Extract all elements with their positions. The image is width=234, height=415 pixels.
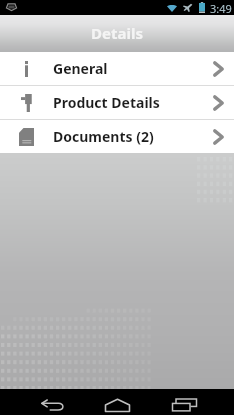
button[interactable]: Back bbox=[30, 389, 74, 415]
staticText: 3:49 bbox=[210, 1, 232, 16]
button[interactable]: General bbox=[0, 52, 234, 85]
staticText: Documents (2) bbox=[53, 127, 154, 146]
button[interactable]: Home bbox=[95, 389, 139, 415]
staticText: Details bbox=[91, 23, 143, 43]
button[interactable]: Recent apps bbox=[162, 389, 206, 415]
staticText: Product Details bbox=[53, 93, 160, 112]
staticText: General bbox=[53, 59, 108, 78]
button[interactable]: Documents (2) bbox=[0, 120, 234, 153]
button[interactable]: Product Details bbox=[0, 86, 234, 119]
